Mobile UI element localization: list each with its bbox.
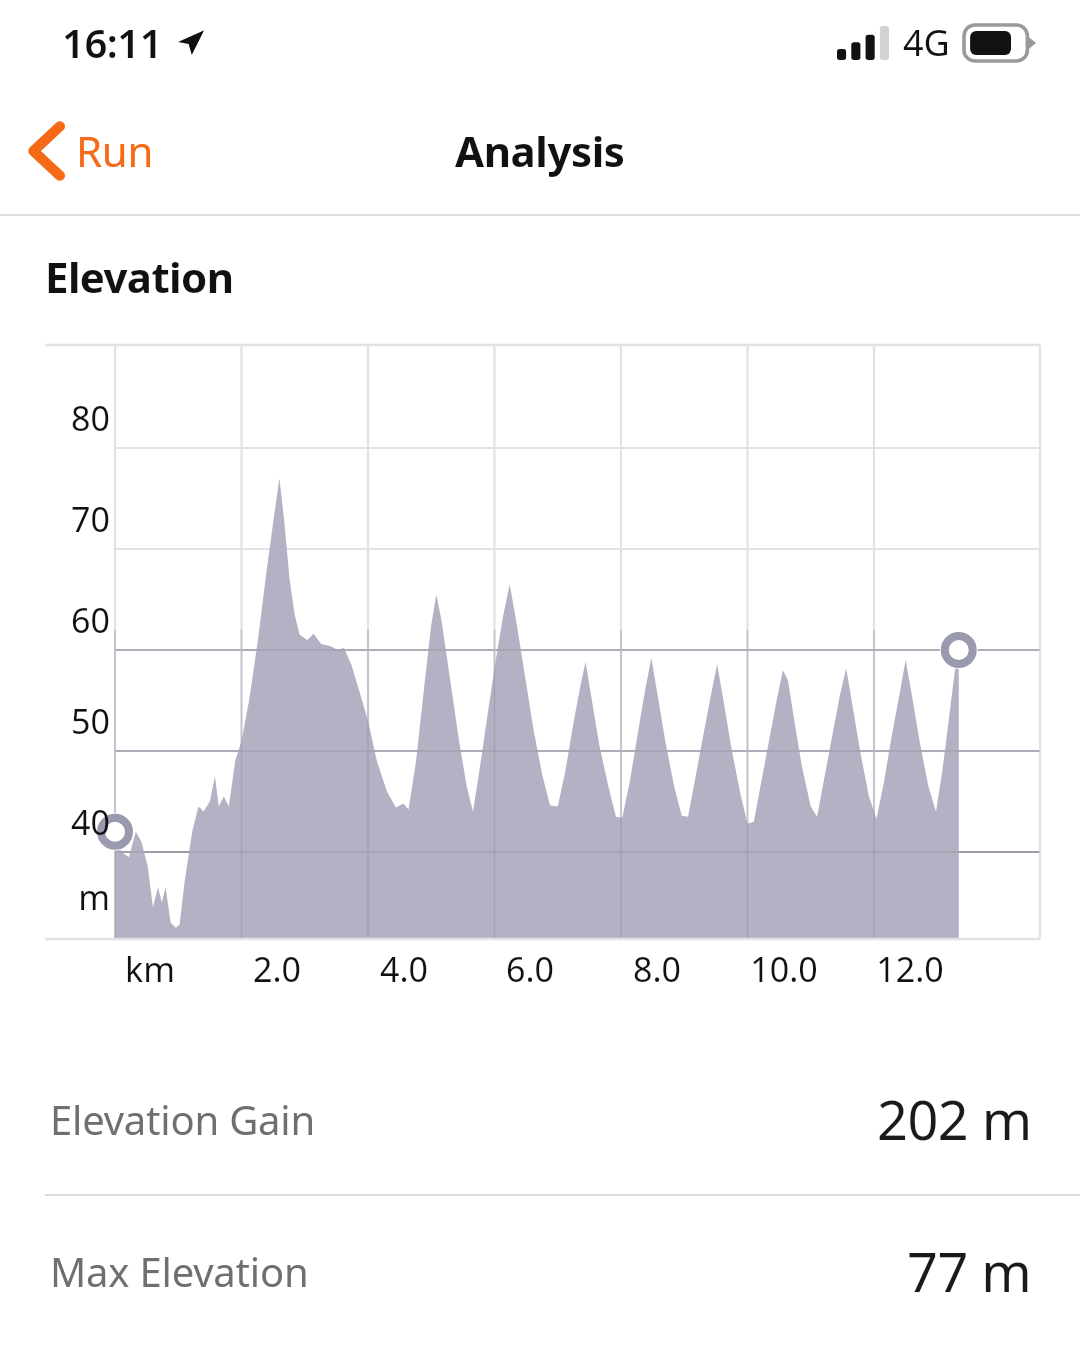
staticText: 6.0 xyxy=(480,946,580,992)
staticText: km xyxy=(100,946,200,992)
staticText: Max Elevation xyxy=(50,1244,309,1298)
button[interactable]: Max Elevation xyxy=(0,1196,1080,1346)
staticText: 8.0 xyxy=(607,946,707,992)
staticText: 70 xyxy=(58,496,110,542)
staticText: 16:11 xyxy=(62,15,163,69)
staticText: m xyxy=(58,874,110,920)
staticText: Elevation xyxy=(45,248,234,305)
staticText: 10.0 xyxy=(734,946,834,992)
staticText: Analysis xyxy=(455,122,625,179)
staticText: 60 xyxy=(58,597,110,643)
staticText: 50 xyxy=(58,698,110,744)
staticText: 77 m xyxy=(907,1234,1032,1308)
staticText: 12.0 xyxy=(860,946,960,992)
staticText: 2.0 xyxy=(227,946,327,992)
staticText: 40 xyxy=(58,799,110,845)
staticText: Elevation Gain xyxy=(50,1092,315,1146)
staticText: 4.0 xyxy=(354,946,454,992)
staticText: Run xyxy=(76,122,154,179)
staticText: 202 m xyxy=(877,1082,1032,1156)
button[interactable]: Run xyxy=(0,106,178,195)
button[interactable]: Elevation Gain xyxy=(0,1044,1080,1194)
staticText: 4G xyxy=(903,18,950,67)
staticText: 80 xyxy=(58,395,110,441)
